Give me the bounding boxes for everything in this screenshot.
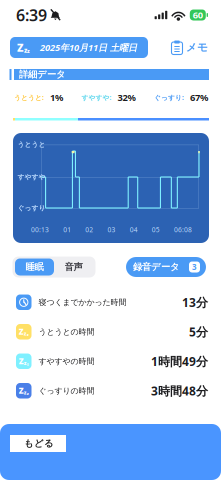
staticText: 06:08 bbox=[174, 225, 192, 234]
staticText: うとうとの時間 bbox=[38, 327, 94, 337]
staticText: z bbox=[27, 47, 30, 55]
staticText: 5分 bbox=[189, 324, 208, 340]
staticText: メモ bbox=[186, 41, 208, 54]
staticText: z bbox=[27, 361, 29, 366]
staticText: 03 bbox=[107, 225, 115, 234]
staticText: 01 bbox=[63, 225, 71, 234]
staticText: すやすや: bbox=[81, 93, 111, 102]
staticText: z bbox=[24, 359, 27, 367]
staticText: 04 bbox=[130, 225, 138, 234]
button[interactable]: 睡眠 bbox=[15, 258, 54, 275]
staticText: Z bbox=[19, 385, 24, 396]
staticText: 00:13 bbox=[31, 225, 49, 234]
staticText: z bbox=[24, 330, 27, 337]
staticText: 13分 bbox=[182, 294, 208, 310]
staticText: 3 bbox=[192, 262, 197, 272]
staticText: 3時間48分 bbox=[151, 383, 208, 399]
button[interactable]: メモ bbox=[171, 37, 208, 58]
staticText: すやすやの時間 bbox=[38, 356, 94, 366]
staticText: 音声 bbox=[64, 261, 82, 273]
staticText: 2025年10月11日 土曜日 bbox=[40, 41, 137, 54]
staticText: ぐっすりの時間 bbox=[38, 386, 94, 396]
staticText: もどる bbox=[24, 438, 54, 449]
staticText: Z bbox=[19, 326, 24, 337]
button[interactable]: 音声 bbox=[54, 258, 93, 275]
staticText: z bbox=[24, 389, 27, 396]
staticText: 睡眠 bbox=[25, 261, 43, 273]
staticText: Z bbox=[19, 356, 24, 366]
staticText: 録音データ bbox=[133, 261, 180, 273]
staticText: 02 bbox=[85, 225, 93, 234]
staticText: 寝つくまでかかった時間 bbox=[38, 297, 126, 307]
staticText: うとうと bbox=[17, 140, 45, 149]
button[interactable]: Z bbox=[10, 37, 148, 58]
button[interactable]: 寝つくまでかかった時間 bbox=[0, 287, 221, 317]
staticText: うとうと: bbox=[14, 93, 44, 102]
staticText: z bbox=[27, 332, 29, 337]
staticText: 詳細データ bbox=[19, 69, 66, 80]
staticText: ぐっすり: bbox=[154, 93, 184, 102]
staticText: 05 bbox=[152, 225, 160, 234]
staticText: 1時間49分 bbox=[151, 353, 208, 369]
button[interactable]: もどる bbox=[10, 435, 66, 452]
staticText: すやすや bbox=[17, 173, 45, 181]
staticText: 60 bbox=[193, 9, 203, 21]
staticText: z bbox=[27, 391, 29, 396]
staticText: 1% bbox=[50, 91, 63, 104]
staticText: z bbox=[24, 46, 27, 55]
button[interactable]: Z bbox=[0, 346, 221, 376]
button[interactable]: 録音データ bbox=[126, 257, 206, 277]
button[interactable]: Z bbox=[0, 317, 221, 346]
staticText: 6:39 bbox=[16, 4, 47, 26]
staticText: 67% bbox=[190, 91, 208, 104]
staticText: 32% bbox=[117, 91, 135, 104]
staticText: Z bbox=[17, 40, 24, 55]
staticText: ぐっすり bbox=[17, 204, 45, 212]
button[interactable]: Z bbox=[0, 376, 221, 405]
